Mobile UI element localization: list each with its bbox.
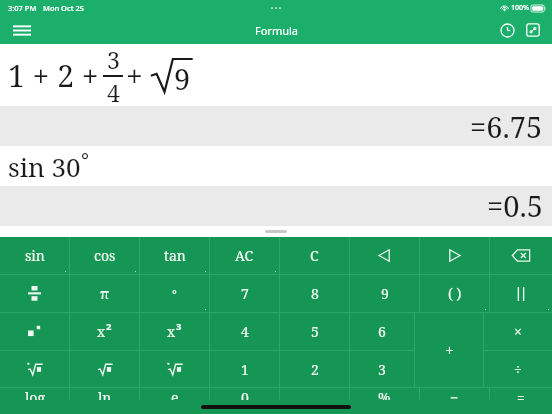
staticText: =0.5 [487, 186, 543, 225]
button[interactable]: ( ) [420, 275, 489, 312]
staticText: 8 [311, 284, 319, 303]
staticText: 9 [174, 59, 191, 98]
staticText: 3 [176, 320, 182, 333]
staticText: 100% [511, 3, 529, 13]
staticText: 9 [381, 284, 389, 303]
button[interactable]: AC [210, 237, 279, 274]
button[interactable]: 8 [280, 275, 349, 312]
button[interactable]: 0 [210, 388, 279, 400]
button[interactable]: 2 [280, 351, 349, 387]
staticText: 4 [107, 77, 120, 106]
button[interactable]: x [140, 313, 209, 350]
button[interactable]: 4 [210, 313, 279, 350]
button[interactable]: 1 [210, 351, 279, 387]
staticText: sin 30 [8, 149, 81, 184]
button[interactable]: log [0, 388, 69, 400]
button[interactable]: sin [0, 237, 69, 274]
staticText: % [378, 388, 391, 400]
staticText: ° [172, 286, 177, 302]
button[interactable]: Nth root [0, 351, 69, 387]
button[interactable]: 5 [280, 313, 349, 350]
button[interactable]: Absolute value [490, 275, 552, 312]
staticText: = [517, 388, 525, 400]
staticText: 3 [107, 44, 120, 75]
staticText: 2 [311, 360, 319, 379]
staticText: AC [235, 246, 254, 265]
button[interactable]: sin 30 [0, 146, 552, 186]
staticText: sin [25, 246, 45, 265]
staticText: 1 [241, 360, 249, 379]
button[interactable]: ° [140, 275, 209, 312]
button[interactable]: + [415, 313, 483, 387]
staticText: × [514, 322, 522, 341]
button[interactable]: tan [140, 237, 209, 274]
staticText: 3:07 PM [8, 3, 37, 13]
staticText: 2 [106, 320, 112, 333]
staticText: e [171, 388, 179, 400]
button[interactable]: Move cursor right [420, 237, 489, 274]
button[interactable]: 6 [350, 313, 414, 350]
staticText: 5 [311, 322, 319, 341]
button[interactable]: % [350, 388, 419, 400]
staticText: ÷ [514, 360, 522, 379]
staticText: 7 [241, 284, 249, 303]
staticText: π [100, 284, 110, 303]
button[interactable]: Resize keyboard [265, 230, 287, 233]
staticText: 0 [241, 388, 249, 400]
staticText: =6.75 [470, 107, 543, 146]
button[interactable]: 7 [210, 275, 279, 312]
staticText: cos [94, 246, 116, 265]
button[interactable]: Cube root [140, 351, 209, 387]
button[interactable]: C [280, 237, 349, 274]
staticText: 4 [241, 322, 249, 341]
button[interactable]: Menu [8, 16, 36, 44]
staticText: x [97, 322, 106, 341]
staticText: ° [81, 147, 89, 174]
staticText: C [310, 246, 319, 265]
button[interactable]: Power [0, 313, 69, 350]
staticText: • • • [271, 4, 281, 12]
staticText: tan [164, 246, 186, 265]
button[interactable]: ÷ [484, 351, 552, 387]
button[interactable]: cos [70, 237, 139, 274]
staticText: 6 [378, 322, 386, 341]
button[interactable]: Share [520, 17, 546, 43]
staticText: − [450, 388, 459, 400]
button[interactable]: x [70, 313, 139, 350]
button[interactable]: Backspace [490, 237, 552, 274]
button[interactable]: History [494, 17, 520, 43]
button[interactable]: Square root [70, 351, 139, 387]
button[interactable]: =6.75 [0, 106, 552, 146]
button[interactable]: π [70, 275, 139, 312]
staticText: log [25, 388, 45, 400]
button[interactable]: = [490, 388, 552, 400]
staticText: x [167, 322, 176, 341]
button[interactable]: ln [70, 388, 139, 400]
staticText: ln [98, 388, 112, 400]
staticText: 3 [378, 360, 386, 379]
staticText: Formula [255, 23, 298, 38]
button[interactable]: Fraction [0, 275, 69, 312]
staticText: + [445, 339, 454, 361]
button[interactable]: =0.5 [0, 186, 552, 226]
button[interactable]: Move cursor left [350, 237, 419, 274]
staticText: + [126, 55, 143, 96]
button[interactable]: 3 [350, 351, 414, 387]
staticText: ( ) [448, 284, 462, 303]
button[interactable]: − [420, 388, 489, 400]
button[interactable]: 9 [350, 275, 419, 312]
button[interactable]: e [140, 388, 209, 400]
button[interactable]: × [484, 313, 552, 350]
staticText: 1 + 2 + [8, 55, 99, 96]
button[interactable]: 1 + 2 + [0, 44, 552, 106]
staticText: Mon Oct 25 [43, 3, 85, 13]
